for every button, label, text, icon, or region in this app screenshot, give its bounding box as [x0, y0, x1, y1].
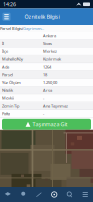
staticText: İl	[2, 41, 4, 46]
staticText: Nitelik	[2, 88, 13, 93]
staticText: Parsel Bilgisi	[0, 26, 23, 31]
button[interactable]: Menu	[77, 187, 93, 202]
staticText: Pafta	[2, 111, 10, 116]
staticText: Yüz Ölçüm	[2, 80, 21, 85]
staticText: Mahalle/Köy	[2, 56, 23, 62]
staticText: Sivas	[43, 41, 52, 46]
button[interactable]: Measure	[31, 187, 46, 202]
staticText: Arsa	[43, 88, 52, 93]
staticText: -	[43, 95, 44, 101]
staticText: Zemin Tip	[2, 103, 19, 108]
button[interactable]: Menu	[0, 8, 13, 25]
staticText: 14:26	[3, 1, 16, 8]
button[interactable]: Locate me	[46, 187, 62, 202]
staticText: 18	[43, 72, 47, 77]
staticText: Ada	[2, 64, 9, 69]
staticText: Öznitelik Bilgisi	[24, 13, 59, 20]
button[interactable]: Place pin	[15, 187, 31, 202]
staticText: 1264	[43, 64, 51, 69]
staticText: Mevkii	[2, 95, 14, 101]
staticText: Gayrimenkul	[23, 26, 45, 31]
staticText: Kızılırmak	[43, 56, 61, 62]
button[interactable]: Layers	[0, 187, 15, 202]
button[interactable]: Taşınmaza Git	[2, 119, 91, 130]
staticText: 1.250,00	[43, 80, 57, 85]
button[interactable]: Search	[62, 187, 77, 202]
staticText: Ana Taşınmaz	[43, 103, 68, 108]
staticText: Parsel	[2, 72, 13, 77]
staticText: Taşınmaza Git	[33, 121, 68, 128]
staticText: Merkez	[43, 49, 57, 54]
button[interactable]: Gayrimenkul	[23, 25, 45, 32]
button[interactable]: Parsel Bilgisi	[0, 25, 23, 32]
staticText: Ankara	[43, 33, 56, 38]
staticText: İlçe	[2, 49, 8, 54]
staticText: -	[43, 111, 44, 116]
